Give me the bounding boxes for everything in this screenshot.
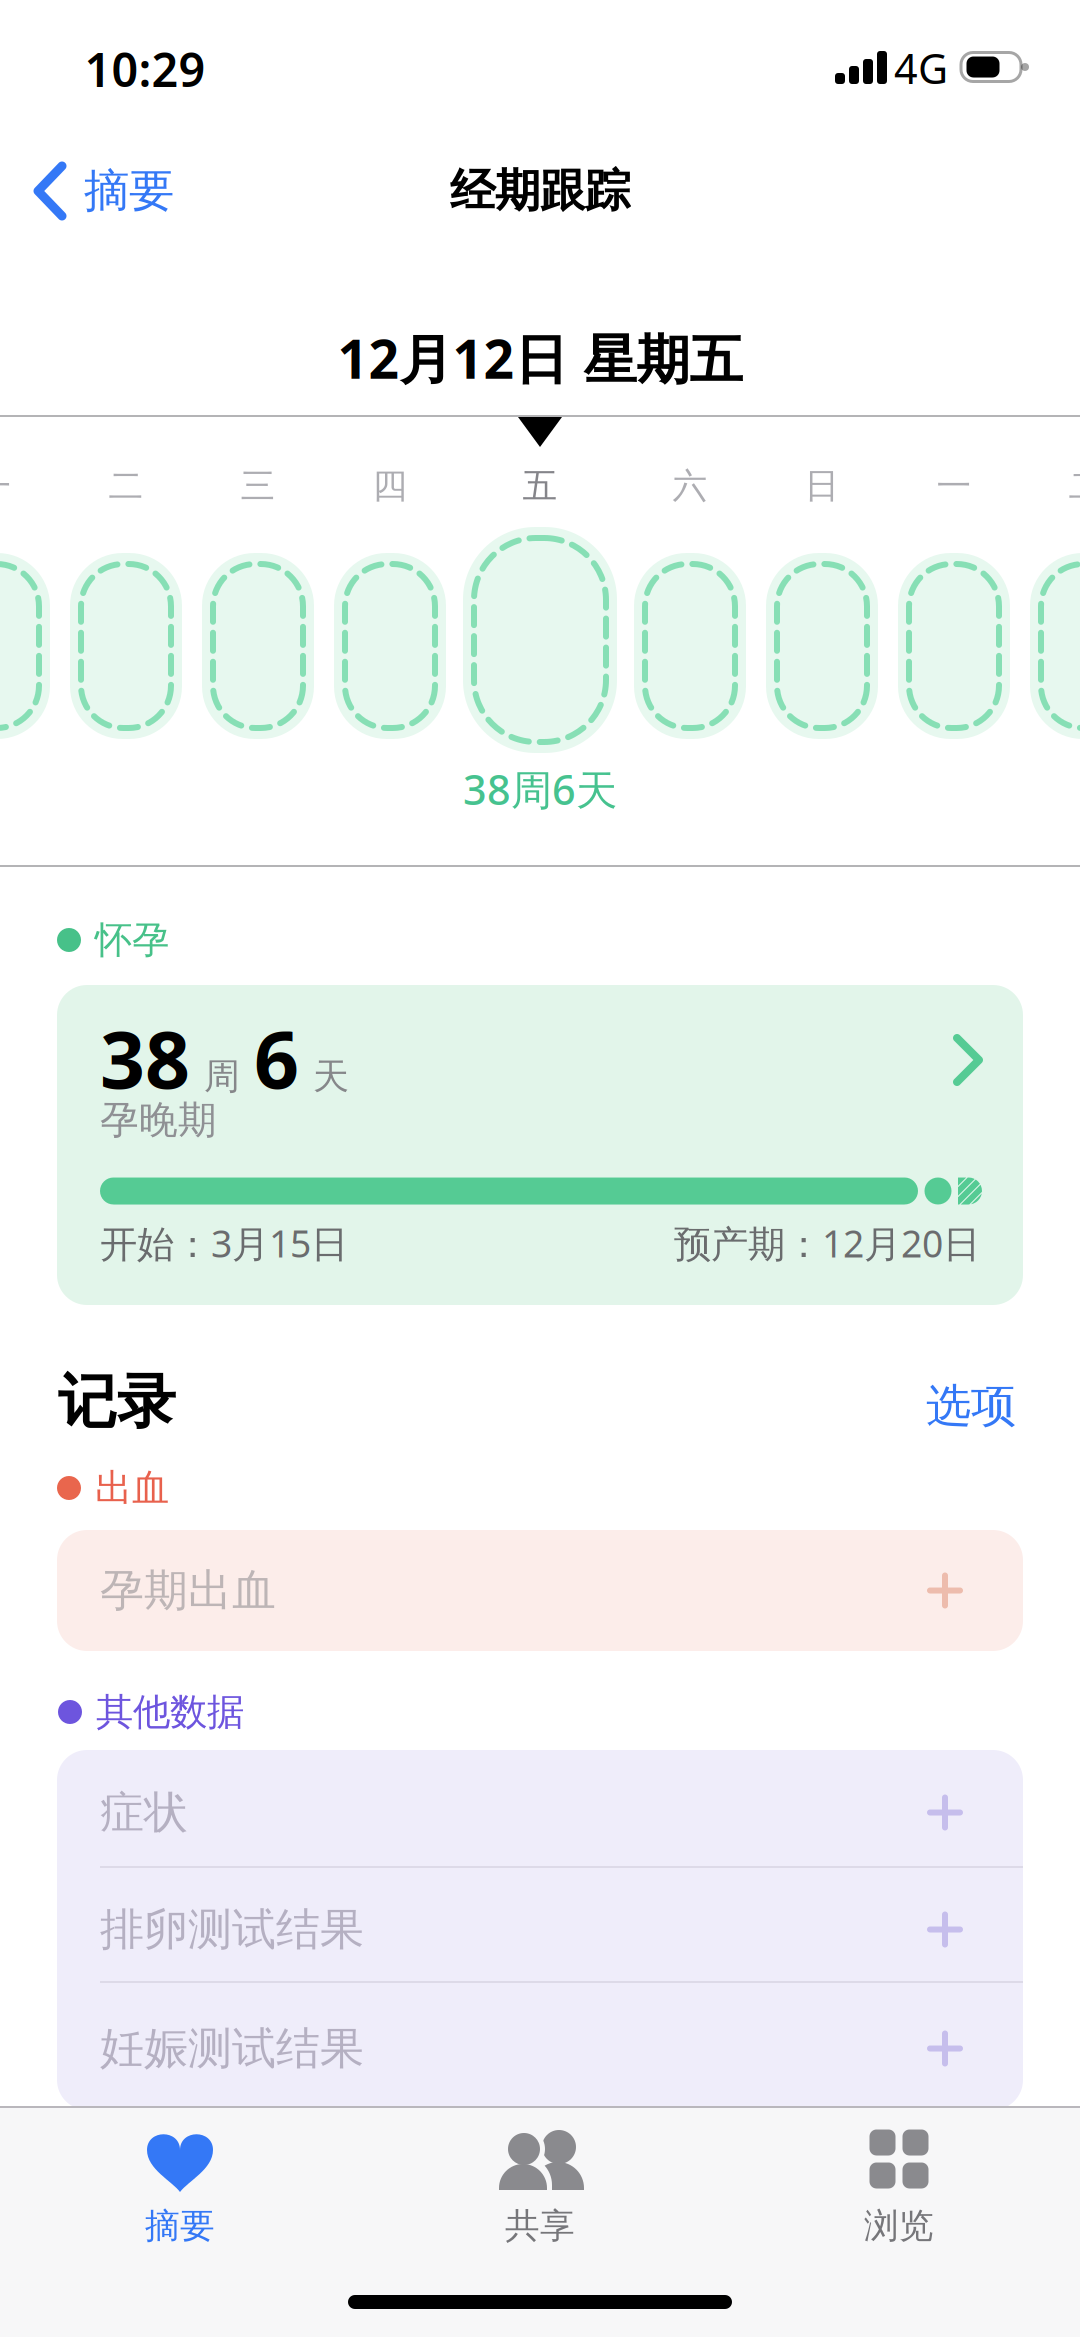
staticText: 6 xyxy=(254,1006,299,1110)
staticText: 38周6天 xyxy=(463,762,617,816)
button[interactable]: 12月13日 星期六 xyxy=(634,553,746,739)
staticText: 天 xyxy=(313,1054,349,1099)
staticText: 日 xyxy=(804,465,839,507)
staticText: 六 xyxy=(672,465,707,507)
staticText: 摘要 xyxy=(84,163,174,219)
staticText: 四 xyxy=(372,465,407,507)
button[interactable]: 12月10日 星期三 xyxy=(202,553,314,739)
staticText: 怀孕 xyxy=(95,917,169,963)
staticText: 排卵测试结果 xyxy=(100,1902,364,1956)
staticText: 其他数据 xyxy=(96,1689,244,1735)
staticText: 症状 xyxy=(100,1785,188,1839)
staticText: 经期跟踪 xyxy=(450,163,630,219)
staticText: 4G xyxy=(894,41,948,95)
staticText: 38 xyxy=(100,1006,190,1110)
button[interactable]: 摘要 xyxy=(70,2105,290,2265)
button[interactable]: 12月8日 星期一 xyxy=(0,553,50,739)
staticText: 预产期：12月20日 xyxy=(674,1218,980,1268)
staticText: 五 xyxy=(522,465,557,507)
staticText: 开始：3月15日 xyxy=(100,1218,348,1268)
button[interactable]: 共享 xyxy=(430,2105,650,2265)
button[interactable]: 12月14日 星期日 xyxy=(766,553,878,739)
button[interactable]: 12月9日 星期二 xyxy=(70,553,182,739)
button[interactable]: 12月11日 星期四 xyxy=(334,553,446,739)
button[interactable]: 排卵测试结果 xyxy=(57,1871,1023,1988)
staticText: 妊娠测试结果 xyxy=(100,2021,364,2075)
staticText: 一 xyxy=(0,465,11,507)
staticText: 记录 xyxy=(58,1366,176,1438)
button[interactable]: 12月12日 星期五 xyxy=(463,527,617,753)
staticText: 三 xyxy=(240,465,275,507)
button[interactable]: 12月15日 星期一 xyxy=(898,553,1010,739)
button[interactable]: 症状 xyxy=(57,1754,1023,1871)
staticText: 选项 xyxy=(926,1378,1016,1434)
staticText: 摘要 xyxy=(145,2205,215,2247)
staticText: 共享 xyxy=(505,2205,575,2247)
staticText: 孕期出血 xyxy=(100,1563,276,1617)
staticText: 一 xyxy=(936,465,971,507)
button[interactable]: 摘要 xyxy=(38,163,174,219)
staticText: 出血 xyxy=(95,1465,169,1511)
staticText: 孕晚期 xyxy=(100,1096,217,1144)
staticText: 12月12日 星期五 xyxy=(337,323,742,393)
button[interactable]: 12月16日 星期二 xyxy=(1030,553,1080,739)
staticText: 浏览 xyxy=(864,2205,934,2247)
button[interactable]: 选项 xyxy=(926,1378,1016,1434)
staticText: 10:29 xyxy=(84,38,205,100)
button[interactable]: 浏览 xyxy=(789,2105,1009,2265)
staticText: 二 xyxy=(108,465,143,507)
button[interactable]: 孕期出血 xyxy=(57,1530,1023,1651)
button[interactable]: 38 xyxy=(57,985,1023,1305)
staticText: 周 xyxy=(204,1054,240,1099)
staticText: 二 xyxy=(1068,465,1080,507)
button[interactable]: 妊娠测试结果 xyxy=(57,1990,1023,2107)
